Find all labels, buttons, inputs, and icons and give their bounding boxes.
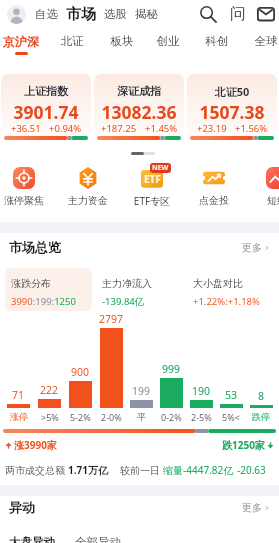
staticText: 涨跌分布: [11, 277, 51, 290]
staticText: +0.94%: [49, 122, 82, 135]
staticText: 创业: [153, 34, 183, 48]
staticText: 1507.38: [187, 100, 277, 124]
staticText: 平: [137, 411, 146, 422]
staticText: 异动: [9, 499, 35, 515]
staticText: 跌1250家: [222, 438, 265, 452]
button[interactable]: 选股: [104, 7, 127, 21]
staticText: 北证50: [187, 84, 277, 99]
button[interactable]: 大小盘对比: [187, 268, 274, 311]
button[interactable]: Search: [195, 1, 221, 27]
staticText: 999: [162, 362, 181, 376]
staticText: 涨3990家: [14, 438, 57, 452]
staticText: 问: [230, 4, 246, 24]
button[interactable]: 涨停聚焦: [0, 167, 55, 213]
button[interactable]: 创业: [153, 34, 183, 60]
staticText: -139.84亿: [102, 295, 145, 308]
staticText: 71: [12, 388, 25, 402]
staticText: 点金投: [183, 194, 245, 207]
staticText: 板块: [107, 34, 137, 48]
staticText: 2797: [99, 312, 124, 326]
staticText: 2-0%: [101, 411, 122, 423]
button[interactable]: 大盘异动: [9, 535, 55, 543]
staticText: 科创: [202, 34, 232, 48]
staticText: 199: [132, 384, 151, 398]
button[interactable]: 深证成指: [94, 74, 184, 142]
button[interactable]: Messages: [253, 1, 279, 27]
staticText: 8: [258, 389, 265, 403]
staticText: +1.56%: [235, 122, 268, 135]
staticText: +23.19: [197, 122, 227, 135]
button[interactable]: 主力净流入: [96, 268, 183, 311]
staticText: 京沪深: [0, 34, 42, 49]
button[interactable]: Ask: [225, 1, 251, 27]
staticText: +1.22%:+1.18%: [193, 295, 260, 308]
staticText: 主力资金: [57, 194, 119, 207]
staticText: 涨停聚焦: [0, 194, 55, 207]
staticText: 主力净流入: [102, 277, 152, 290]
staticText: 0-2%: [161, 411, 182, 423]
staticText: 大小盘对比: [193, 277, 243, 290]
button[interactable]: 更多: [242, 501, 270, 514]
staticText: 较前一日: [120, 463, 163, 477]
staticText: 更多: [242, 501, 262, 514]
staticText: 53: [225, 388, 238, 402]
staticText: 1.71万亿: [68, 463, 108, 477]
button[interactable]: 涨跌分布: [5, 268, 92, 311]
staticText: +1.45%: [145, 122, 178, 135]
staticText: 更多: [242, 241, 262, 254]
button[interactable]: 更多: [242, 241, 270, 254]
button[interactable]: 全球: [251, 34, 279, 60]
staticText: 5-2%: [70, 411, 91, 423]
button[interactable]: 上证指数: [1, 74, 91, 142]
staticText: 缩量-4447.82亿: [163, 463, 234, 477]
button[interactable]: 短线: [246, 167, 279, 213]
button[interactable]: 揭秘: [135, 7, 158, 21]
staticText: +187.25: [101, 122, 137, 135]
staticText: 短线: [246, 194, 279, 207]
staticText: 涨停: [10, 411, 28, 422]
button[interactable]: 京沪深: [0, 34, 42, 60]
button[interactable]: 北证: [57, 34, 87, 60]
staticText: 全球: [251, 34, 279, 48]
staticText: 3901.74: [1, 100, 91, 124]
staticText: 深证成指: [94, 84, 184, 98]
staticText: 北证: [57, 34, 87, 48]
staticText: ETF: [144, 172, 161, 186]
staticText: 2-5%: [191, 411, 212, 423]
staticText: 上证指数: [1, 84, 91, 98]
button[interactable]: 市场: [66, 5, 96, 24]
staticText: ETF专区: [121, 194, 183, 208]
button[interactable]: 北证50: [187, 74, 277, 142]
button[interactable]: 点金投: [183, 167, 245, 213]
staticText: 222: [40, 383, 59, 397]
button[interactable]: Profile: [7, 5, 26, 24]
staticText: NEW: [152, 163, 169, 173]
staticText: 13082.36: [94, 100, 184, 124]
button[interactable]: 板块: [107, 34, 137, 60]
staticText: >5%: [41, 411, 59, 423]
staticText: 两市成交总额: [5, 463, 68, 477]
button[interactable]: 科创: [202, 34, 232, 60]
staticText: 190: [192, 384, 211, 398]
staticText: 5%<: [222, 411, 240, 423]
staticText: 市场总览: [9, 239, 61, 255]
button[interactable]: 主力资金: [57, 167, 119, 213]
button[interactable]: 全部异动: [75, 535, 121, 543]
staticText: 900: [71, 365, 90, 379]
staticText: 3990:199:1250: [11, 295, 76, 308]
staticText: 跌停: [252, 411, 270, 422]
staticText: -20.63%: [237, 463, 274, 477]
button[interactable]: ETF: [121, 167, 183, 213]
staticText: +36.51: [11, 122, 41, 135]
button[interactable]: 自选: [35, 7, 58, 21]
